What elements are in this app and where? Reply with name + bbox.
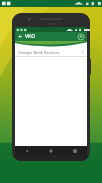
button[interactable]: Profile <box>77 33 85 41</box>
button[interactable]: Home <box>39 146 63 155</box>
staticText: VKO <box>25 33 36 40</box>
button[interactable]: Cheque Book Services <box>15 48 87 56</box>
button[interactable]: Back <box>17 33 24 40</box>
staticText: Cheque Book Services <box>18 50 60 55</box>
button[interactable]: Back <box>15 146 39 155</box>
button[interactable]: Recent apps <box>63 146 87 155</box>
